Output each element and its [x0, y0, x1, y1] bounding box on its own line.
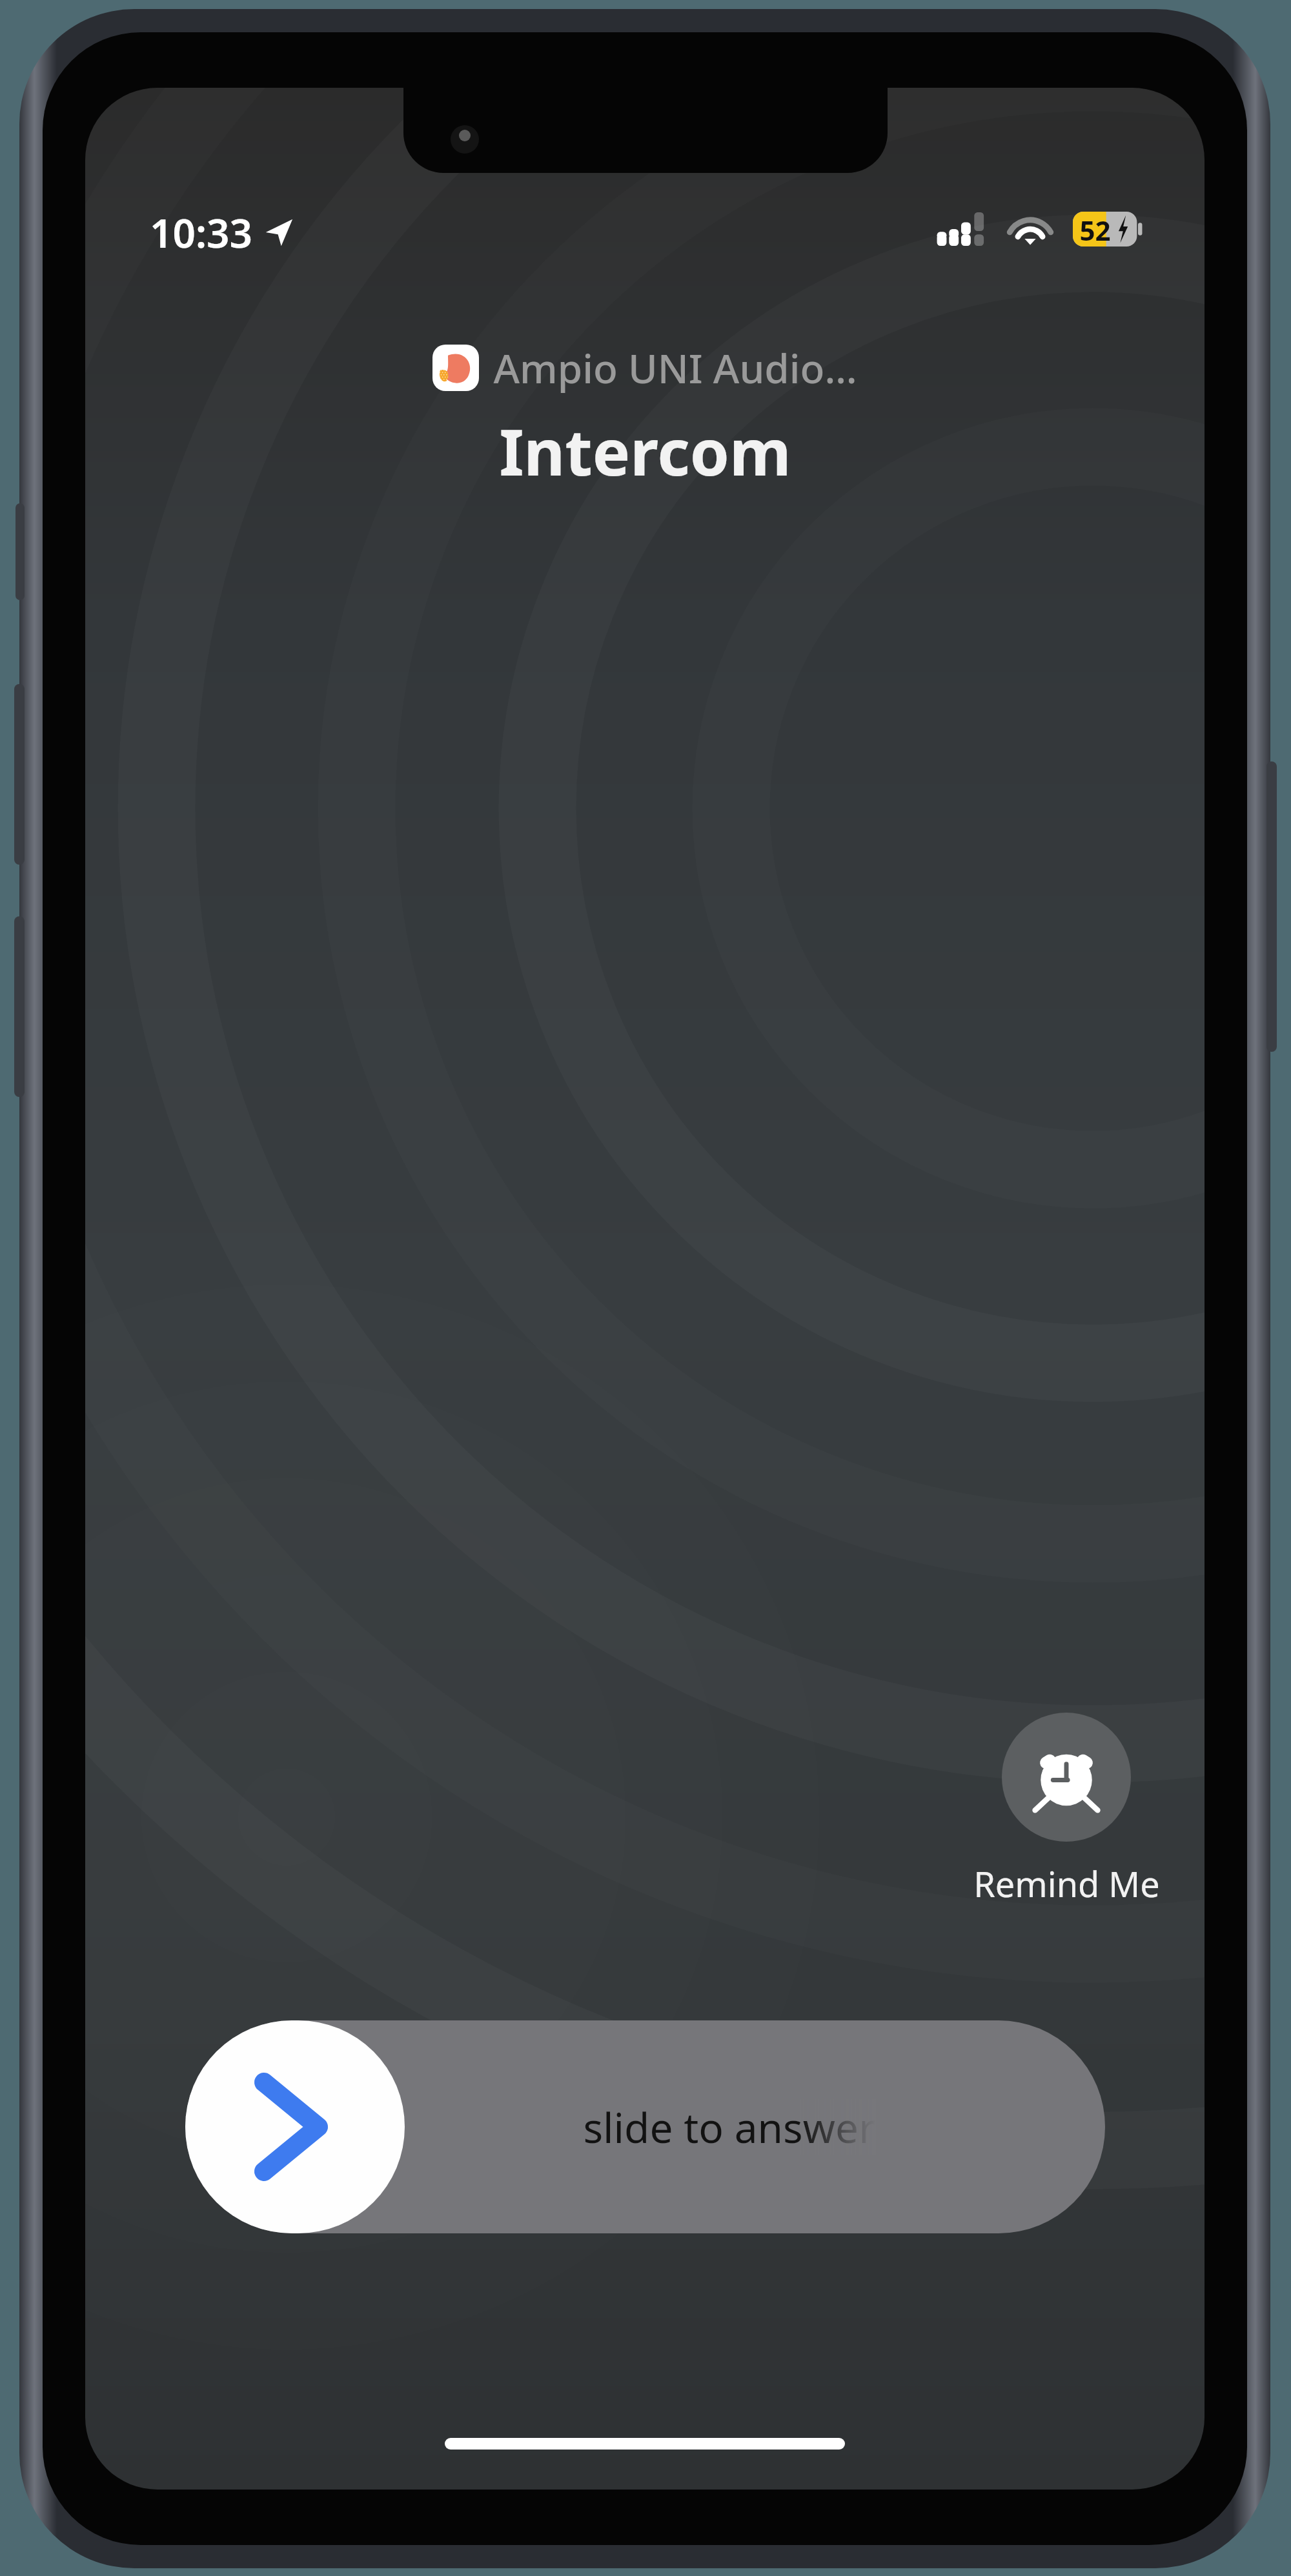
other: Remind Me: [1002, 1713, 1131, 1842]
button[interactable]: Remind Me: [889, 1713, 1205, 1907]
button[interactable]: Answer: [185, 2020, 405, 2233]
staticText: slide to answer: [583, 2099, 876, 2155]
button[interactable]: slide to answer: [185, 2020, 1105, 2233]
staticText: Remind Me: [973, 1860, 1160, 1907]
staticText: Intercom: [499, 408, 791, 494]
staticText: 52: [1079, 212, 1111, 247]
staticText: 10:33: [150, 205, 252, 259]
staticText: Ampio UNI Audio…: [493, 341, 857, 395]
